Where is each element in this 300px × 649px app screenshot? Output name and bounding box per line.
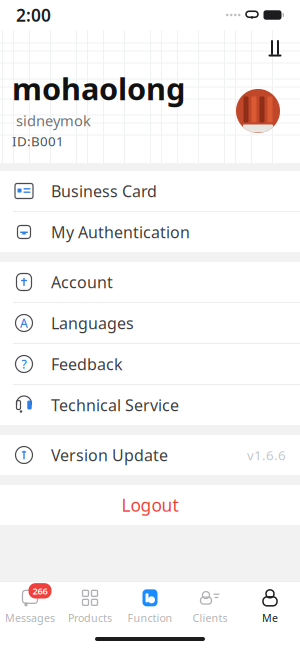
staticText: Version Update: [51, 444, 168, 466]
button[interactable]: Me: [240, 582, 300, 629]
button[interactable]: ?: [0, 344, 300, 385]
staticText: My Authentication: [51, 221, 190, 243]
staticText: mohaolong: [12, 68, 185, 109]
staticText: v1.6.6: [247, 446, 286, 464]
button[interactable]: Logout: [0, 485, 300, 525]
staticText: Technical Service: [51, 394, 179, 416]
button[interactable]: Account: [0, 262, 300, 303]
button[interactable]: Edit profile: [258, 32, 292, 66]
staticText: Business Card: [51, 180, 157, 202]
staticText: sidneymok: [12, 111, 91, 130]
button[interactable]: Technical Service: [0, 385, 300, 425]
staticText: Feedback: [51, 353, 123, 375]
button[interactable]: 266: [0, 582, 60, 629]
staticText: A: [20, 315, 28, 331]
staticText: ?: [21, 356, 26, 372]
staticText: Account: [51, 271, 113, 293]
button[interactable]: Function: [120, 582, 180, 629]
button[interactable]: Business Card: [0, 171, 300, 212]
staticText: Me: [262, 611, 278, 625]
staticText: Clients: [192, 611, 227, 625]
staticText: ID:B001: [12, 132, 64, 150]
staticText: 266: [32, 585, 47, 597]
staticText: Languages: [51, 312, 134, 334]
staticText: Logout: [121, 493, 178, 516]
staticText: 2:00: [16, 3, 51, 26]
button[interactable]: A: [0, 303, 300, 344]
staticText: Messages: [5, 611, 55, 625]
staticText: Products: [68, 611, 112, 625]
staticText: Function: [127, 611, 172, 625]
button[interactable]: My Authentication: [0, 212, 300, 252]
button[interactable]: Clients: [180, 582, 240, 629]
button[interactable]: Version Update: [0, 435, 300, 475]
button[interactable]: Products: [60, 582, 120, 629]
